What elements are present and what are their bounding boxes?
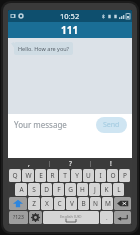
staticText: , — [28, 159, 30, 168]
staticText: F — [57, 185, 61, 194]
staticText: Send — [103, 120, 120, 130]
staticText: R — [50, 171, 55, 180]
button[interactable]: B — [78, 197, 89, 210]
button[interactable]: L — [113, 183, 124, 196]
button[interactable]: R — [47, 169, 58, 182]
staticText: E — [39, 171, 43, 180]
button[interactable]: Y — [71, 169, 82, 182]
staticText: . — [106, 214, 108, 222]
button[interactable]: O — [107, 169, 118, 182]
button[interactable]: ?123 — [9, 211, 28, 224]
button[interactable]: I — [95, 169, 106, 182]
staticText: P — [123, 171, 127, 180]
staticText: G — [68, 185, 73, 194]
staticText: J — [94, 185, 96, 194]
staticText: B — [81, 199, 86, 208]
staticText: ?123 — [13, 214, 24, 221]
button[interactable]: G — [65, 183, 76, 196]
button[interactable]: Backspace — [114, 197, 131, 210]
button[interactable]: X — [41, 197, 53, 210]
button[interactable]: T — [59, 169, 70, 182]
button[interactable]: Z — [28, 197, 40, 210]
staticText: H — [80, 185, 85, 194]
staticText: N — [93, 199, 98, 208]
staticText: Y — [75, 171, 79, 180]
button[interactable]: Enter — [114, 211, 131, 224]
button[interactable]: . — [100, 211, 113, 224]
button[interactable]: U — [83, 169, 94, 182]
staticText: 10:52 — [60, 11, 80, 21]
button[interactable]: P — [119, 169, 130, 182]
button[interactable]: ! — [91, 159, 131, 168]
staticText: U — [86, 171, 91, 180]
button[interactable]: M — [102, 197, 113, 210]
button[interactable]: Your message — [14, 119, 67, 130]
staticText: I — [99, 171, 102, 180]
staticText: S — [32, 185, 36, 194]
staticText: Q — [12, 171, 18, 180]
staticText: K — [104, 185, 109, 194]
button[interactable]: Hello. How are you? — [14, 42, 73, 55]
button[interactable]: Q — [9, 169, 21, 182]
button[interactable]: N — [90, 197, 101, 210]
button[interactable]: H — [77, 183, 88, 196]
staticText: C — [57, 199, 62, 208]
staticText: English (UK) — [60, 214, 82, 219]
button[interactable]: C — [54, 197, 65, 210]
staticText: T — [63, 171, 67, 180]
staticText: ? — [69, 159, 72, 168]
staticText: W — [25, 171, 32, 180]
button[interactable]: W — [22, 169, 34, 182]
staticText: ! — [110, 159, 112, 168]
button[interactable]: Send — [96, 117, 127, 133]
staticText: L — [117, 185, 121, 194]
button[interactable]: F — [53, 183, 64, 196]
button[interactable]: English (UK) — [43, 211, 99, 224]
staticText: X — [45, 199, 49, 208]
staticText: M — [105, 199, 111, 208]
button[interactable]: D — [41, 183, 52, 196]
button[interactable]: S — [28, 183, 40, 196]
button[interactable]: Settings — [29, 211, 42, 224]
staticText: 111 — [61, 23, 79, 37]
button[interactable]: K — [101, 183, 112, 196]
staticText: V — [70, 199, 74, 208]
button[interactable]: V — [66, 197, 77, 210]
button[interactable]: Shift — [9, 197, 27, 210]
staticText: O — [110, 171, 116, 180]
staticText: Hello. How are you? — [18, 45, 69, 52]
staticText: Z — [32, 199, 36, 208]
button[interactable]: A — [15, 183, 27, 196]
button[interactable]: J — [89, 183, 100, 196]
button[interactable]: E — [35, 169, 46, 182]
button[interactable]: 111 — [8, 22, 132, 38]
staticText: A — [19, 185, 24, 194]
button[interactable]: , — [9, 159, 49, 168]
button[interactable]: ? — [50, 159, 90, 168]
staticText: D — [44, 185, 49, 194]
